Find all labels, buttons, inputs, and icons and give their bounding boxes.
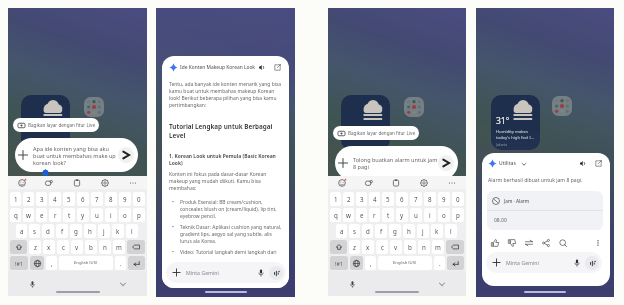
button[interactable]: f bbox=[56, 224, 68, 238]
button[interactable]: Send bbox=[438, 155, 454, 171]
button[interactable]: r bbox=[369, 208, 380, 222]
button[interactable]: Shift bbox=[10, 240, 27, 254]
button[interactable]: Shift bbox=[330, 240, 347, 254]
button[interactable]: 3 bbox=[356, 192, 367, 206]
button[interactable]: Copy bbox=[556, 236, 569, 249]
button[interactable]: . bbox=[115, 256, 126, 270]
button[interactable]: Emoji bbox=[8, 176, 35, 189]
button[interactable]: o bbox=[438, 208, 450, 222]
button[interactable]: Minta Gemini bbox=[486, 252, 602, 273]
button[interactable]: i bbox=[424, 208, 436, 222]
button[interactable]: Like bbox=[488, 236, 501, 249]
button[interactable]: Expand bbox=[519, 159, 528, 168]
button[interactable]: m bbox=[113, 240, 125, 254]
button[interactable]: Jam · Alarm bbox=[487, 191, 603, 230]
button[interactable]: u bbox=[91, 208, 103, 222]
button[interactable]: Enter bbox=[128, 256, 145, 270]
button[interactable]: e bbox=[356, 208, 367, 222]
button[interactable]: Gemini Live bbox=[269, 266, 283, 280]
button[interactable]: , bbox=[365, 256, 376, 270]
button[interactable]: 8 bbox=[105, 192, 117, 206]
button[interactable]: 5 bbox=[382, 192, 394, 206]
button[interactable]: z bbox=[349, 240, 360, 254]
button[interactable]: Bagikan layar dengan fitur Live bbox=[13, 118, 99, 132]
button[interactable]: t bbox=[382, 208, 394, 222]
button[interactable]: 8 bbox=[424, 192, 436, 206]
button[interactable]: x bbox=[362, 240, 374, 254]
button[interactable]: !#1 bbox=[330, 256, 348, 270]
button[interactable]: l bbox=[445, 224, 457, 238]
button[interactable]: x bbox=[43, 240, 55, 254]
button[interactable]: a bbox=[336, 224, 347, 238]
button[interactable]: , bbox=[46, 256, 57, 270]
button[interactable]: 6 bbox=[396, 192, 408, 206]
button[interactable]: v bbox=[71, 240, 83, 254]
button[interactable]: GIF bbox=[355, 176, 382, 189]
button[interactable]: 4 bbox=[369, 192, 380, 206]
button[interactable]: h bbox=[84, 224, 96, 238]
button[interactable]: b bbox=[85, 240, 97, 254]
button[interactable]: 7 bbox=[410, 192, 422, 206]
button[interactable]: l bbox=[126, 224, 138, 238]
button[interactable]: u bbox=[410, 208, 422, 222]
button[interactable]: Bagikan layar dengan fitur Live bbox=[333, 126, 419, 140]
button[interactable]: d bbox=[362, 224, 373, 238]
button[interactable]: Voice input bbox=[26, 278, 38, 290]
button[interactable]: Weather bbox=[21, 95, 70, 150]
button[interactable]: z bbox=[29, 240, 41, 254]
button[interactable]: App folder bbox=[404, 97, 424, 117]
button[interactable]: k bbox=[431, 224, 443, 238]
button[interactable]: Settings bbox=[91, 176, 119, 189]
button[interactable]: Tolong buatkan alarm untuk jam 8 pagi bbox=[335, 146, 458, 180]
button[interactable]: Send bbox=[118, 147, 134, 163]
button[interactable]: 9 bbox=[438, 192, 450, 206]
button[interactable]: !#1 bbox=[10, 256, 28, 270]
button[interactable]: s bbox=[349, 224, 360, 238]
button[interactable]: More bbox=[438, 176, 466, 189]
button[interactable]: Dislike bbox=[505, 236, 518, 249]
button[interactable]: 0 bbox=[452, 192, 464, 206]
button[interactable]: Hide keyboard bbox=[117, 278, 129, 290]
button[interactable]: App folder bbox=[552, 96, 572, 116]
button[interactable]: f bbox=[375, 224, 387, 238]
button[interactable]: p bbox=[452, 208, 464, 222]
button[interactable]: 0 bbox=[133, 192, 145, 206]
button[interactable]: Read aloud bbox=[256, 62, 267, 73]
button[interactable]: j bbox=[417, 224, 429, 238]
button[interactable]: More options bbox=[591, 236, 604, 249]
button[interactable]: p bbox=[133, 208, 145, 222]
button[interactable]: y bbox=[77, 208, 89, 222]
button[interactable]: Change language bbox=[30, 256, 44, 270]
button[interactable]: Backspace bbox=[127, 240, 145, 254]
button[interactable]: a bbox=[16, 224, 27, 238]
button[interactable]: Clipboard bbox=[63, 176, 91, 189]
button[interactable]: Share bbox=[273, 62, 282, 73]
button[interactable]: v bbox=[390, 240, 402, 254]
button[interactable]: 1 bbox=[330, 192, 341, 206]
button[interactable]: English (US) bbox=[59, 256, 113, 270]
button[interactable]: Minta Gemini bbox=[166, 262, 286, 283]
button[interactable]: h bbox=[403, 224, 415, 238]
button[interactable]: i bbox=[105, 208, 117, 222]
button[interactable]: k bbox=[112, 224, 124, 238]
button[interactable]: English (US) bbox=[378, 256, 432, 270]
button[interactable]: Share bbox=[539, 236, 552, 249]
button[interactable]: n bbox=[99, 240, 111, 254]
button[interactable]: Backspace bbox=[446, 240, 464, 254]
button[interactable]: 5 bbox=[63, 192, 75, 206]
button[interactable]: Weather bbox=[341, 95, 390, 150]
button[interactable]: n bbox=[418, 240, 430, 254]
button[interactable]: y bbox=[396, 208, 408, 222]
button[interactable]: w bbox=[23, 208, 34, 222]
button[interactable]: Change language bbox=[350, 256, 363, 270]
button[interactable]: 6 bbox=[77, 192, 89, 206]
button[interactable]: . bbox=[434, 256, 445, 270]
button[interactable]: Clipboard bbox=[382, 176, 410, 189]
button[interactable]: c bbox=[57, 240, 69, 254]
button[interactable]: d bbox=[42, 224, 54, 238]
button[interactable]: GIF bbox=[35, 176, 63, 189]
button[interactable]: Hide keyboard bbox=[436, 278, 448, 290]
button[interactable]: Read aloud bbox=[577, 158, 588, 169]
button[interactable]: 9 bbox=[119, 192, 131, 206]
button[interactable]: q bbox=[330, 208, 341, 222]
